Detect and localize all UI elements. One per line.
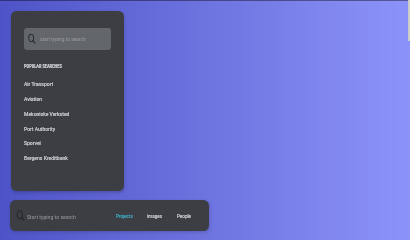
staticText: Sporvei (24, 140, 41, 146)
staticText: POPULAR SEARCHES (24, 64, 62, 69)
button[interactable]: start typing to search (24, 28, 111, 50)
button[interactable]: Sporvei (11, 140, 124, 155)
staticText: Port Authority (24, 126, 56, 132)
button[interactable]: Aviation (11, 96, 124, 111)
button[interactable]: Mekoniske Verksted (11, 111, 124, 126)
staticText: images (147, 214, 163, 219)
button[interactable]: Bergens Kreditbank (11, 155, 124, 170)
button[interactable]: Air Transport (11, 81, 124, 96)
button[interactable]: Projects (113, 205, 137, 227)
staticText: Bergens Kreditbank (24, 155, 68, 161)
staticText: start typing to search (40, 37, 86, 43)
button[interactable]: Port Authority (11, 126, 124, 141)
staticText: Start typing to search (27, 214, 76, 220)
button[interactable]: images (145, 205, 166, 227)
staticText: Projects (116, 214, 133, 219)
button[interactable]: Start typing to search (15, 205, 105, 227)
button[interactable]: People (175, 205, 195, 227)
staticText: Air Transport (24, 81, 54, 87)
staticText: Aviation (24, 96, 43, 102)
staticText: People (177, 214, 192, 219)
staticText: Mekoniske Verksted (24, 111, 70, 117)
